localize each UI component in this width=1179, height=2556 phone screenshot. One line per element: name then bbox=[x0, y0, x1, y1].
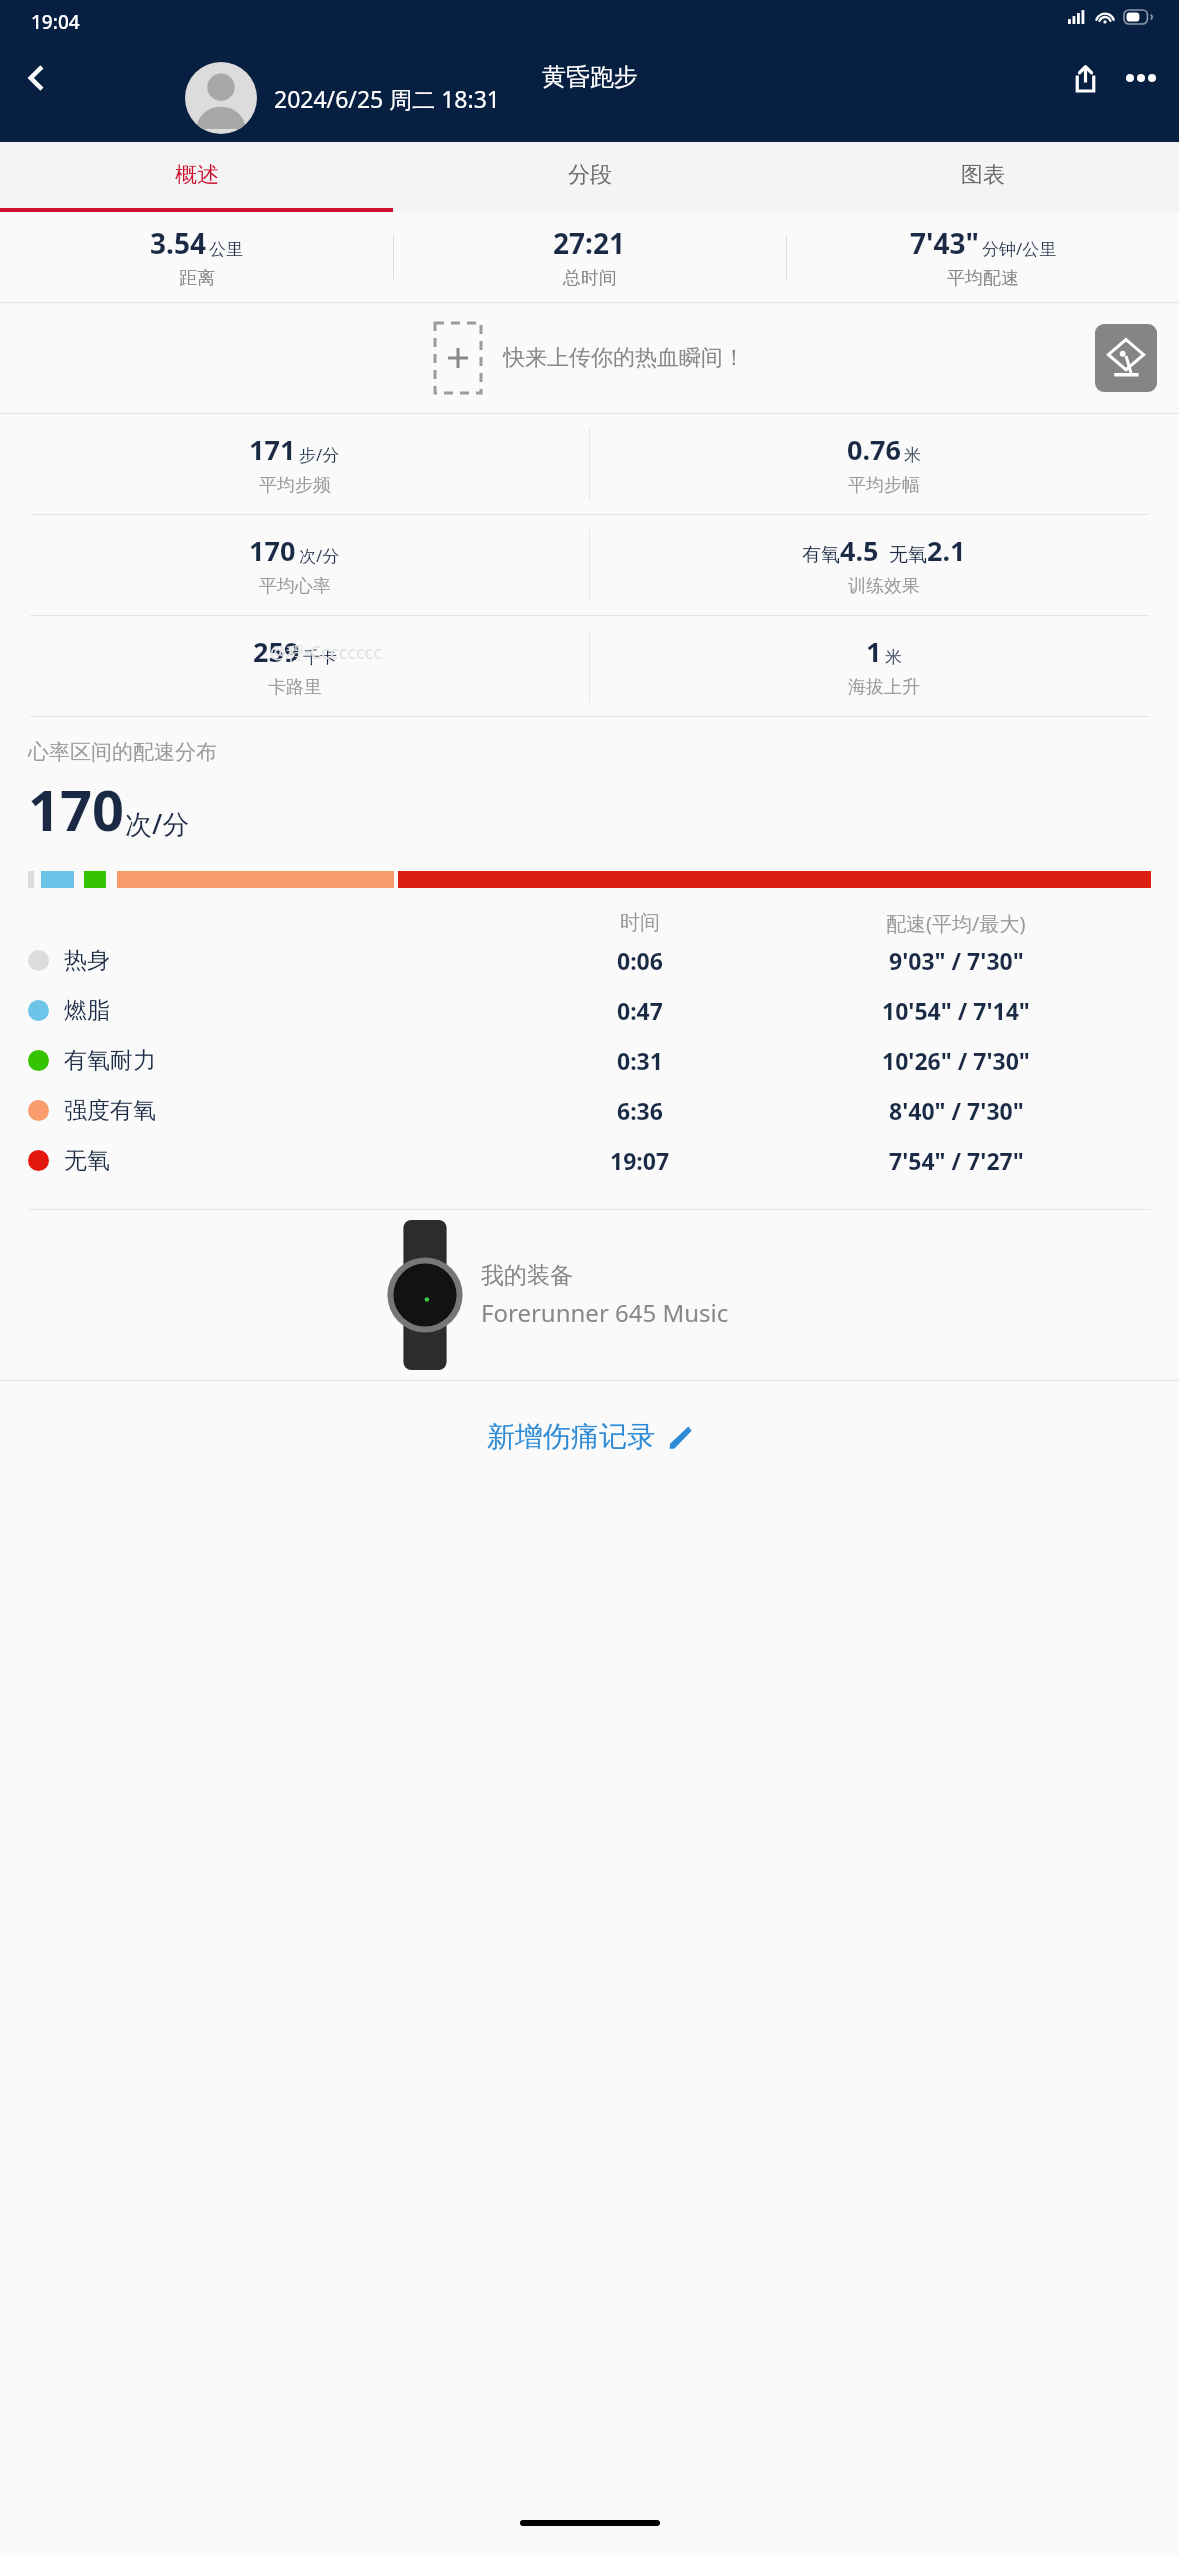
staticText: 2.1 bbox=[927, 532, 966, 569]
staticText: 0:06 bbox=[617, 945, 663, 976]
staticText: 米 bbox=[904, 445, 921, 466]
button[interactable]: 我的装备 bbox=[0, 1210, 1179, 1380]
button[interactable]: 0.76 bbox=[847, 414, 921, 514]
staticText: 公里 bbox=[209, 239, 243, 260]
button[interactable]: Back bbox=[8, 50, 64, 106]
staticText: 次/分 bbox=[299, 544, 340, 567]
staticText: 无氧 bbox=[889, 543, 927, 567]
staticText: 9'03" / 7'30" bbox=[889, 945, 1024, 976]
staticText: 0:31 bbox=[617, 1045, 663, 1076]
button[interactable]: 259 bbox=[253, 616, 337, 716]
staticText: 171 bbox=[249, 431, 296, 468]
staticText: 10'26" / 7'30" bbox=[882, 1045, 1030, 1076]
staticText: 有氧耐力 bbox=[64, 1046, 156, 1075]
staticText: 分钟/公里 bbox=[982, 237, 1057, 260]
staticText: 时间 bbox=[620, 910, 660, 935]
staticText: 总时间 bbox=[563, 267, 617, 290]
staticText: 1 bbox=[866, 633, 882, 670]
staticText: Forerunner 645 Music bbox=[481, 1296, 729, 1329]
staticText: 强度有氧 bbox=[64, 1096, 156, 1125]
staticText: 心率区间的配速分布 bbox=[28, 739, 217, 765]
button[interactable]: Medal bbox=[1095, 324, 1157, 392]
button[interactable]: 无氧 bbox=[0, 1145, 1179, 1195]
button[interactable]: 燃脂 bbox=[0, 995, 1179, 1045]
staticText: 0:47 bbox=[617, 995, 663, 1026]
staticText: 海拔上升 bbox=[848, 676, 920, 699]
button[interactable]: 有氧 bbox=[802, 515, 966, 615]
button[interactable]: Share bbox=[1057, 50, 1113, 106]
staticText: 图表 bbox=[961, 161, 1005, 189]
button[interactable]: 170 bbox=[249, 515, 340, 615]
staticText: 燃脂 bbox=[64, 996, 110, 1025]
staticText: 7'43" bbox=[910, 224, 979, 262]
staticText: 平均心率 bbox=[259, 575, 331, 598]
button[interactable]: 快来上传你的热血瞬间！ bbox=[435, 323, 745, 393]
staticText: 259 bbox=[253, 633, 300, 670]
staticText: @程-Cccccccc bbox=[270, 640, 382, 665]
button[interactable]: 171 bbox=[249, 414, 340, 514]
staticText: 平均配速 bbox=[947, 267, 1019, 290]
staticText: 平均步频 bbox=[259, 474, 331, 497]
staticText: 我的装备 bbox=[481, 1261, 573, 1290]
button[interactable]: 新增伤痛记录 bbox=[0, 1381, 1179, 1491]
staticText: 概述 bbox=[175, 161, 219, 189]
button[interactable]: 图表 bbox=[786, 142, 1179, 208]
button[interactable]: More options bbox=[1113, 50, 1169, 106]
staticText: 步/分 bbox=[299, 443, 340, 466]
staticText: 千卡 bbox=[303, 647, 337, 668]
staticText: 米 bbox=[885, 647, 902, 668]
staticText: 8'40" / 7'30" bbox=[889, 1095, 1024, 1126]
button[interactable]: 分段 bbox=[393, 142, 786, 208]
staticText: 4.5 bbox=[840, 532, 879, 569]
staticText: 配速(平均/最大) bbox=[886, 910, 1026, 937]
staticText: 0.76 bbox=[847, 431, 901, 468]
button[interactable]: 概述 bbox=[0, 142, 393, 208]
staticText: 分段 bbox=[568, 161, 612, 189]
staticText: 快来上传你的热血瞬间！ bbox=[503, 344, 745, 372]
button[interactable]: 1 bbox=[848, 616, 920, 716]
button[interactable]: 有氧耐力 bbox=[0, 1045, 1179, 1095]
staticText: 10'54" / 7'14" bbox=[882, 995, 1030, 1026]
staticText: 2024/6/25 周二 18:31 bbox=[274, 83, 500, 114]
staticText: 次/分 bbox=[125, 805, 190, 842]
button[interactable]: 热身 bbox=[0, 945, 1179, 995]
staticText: 黄昏跑步 bbox=[542, 62, 638, 92]
staticText: 3.54 bbox=[150, 224, 206, 262]
staticText: 27:21 bbox=[553, 224, 625, 262]
staticText: 新增伤痛记录 bbox=[487, 1419, 655, 1454]
staticText: 卡路里 bbox=[268, 676, 322, 699]
staticText: 170 bbox=[249, 532, 296, 569]
staticText: 热身 bbox=[64, 946, 110, 975]
staticText: 无氧 bbox=[64, 1146, 110, 1175]
staticText: 有氧 bbox=[802, 543, 840, 567]
staticText: 7'54" / 7'27" bbox=[889, 1145, 1024, 1176]
staticText: 19:07 bbox=[610, 1145, 670, 1176]
staticText: 19:04 bbox=[31, 9, 80, 35]
staticText: 距离 bbox=[179, 267, 215, 290]
staticText: 训练效果 bbox=[848, 575, 920, 598]
button[interactable]: 强度有氧 bbox=[0, 1095, 1179, 1145]
staticText: 平均步幅 bbox=[848, 474, 920, 497]
staticText: 6:36 bbox=[617, 1095, 663, 1126]
staticText: 170 bbox=[28, 771, 125, 847]
